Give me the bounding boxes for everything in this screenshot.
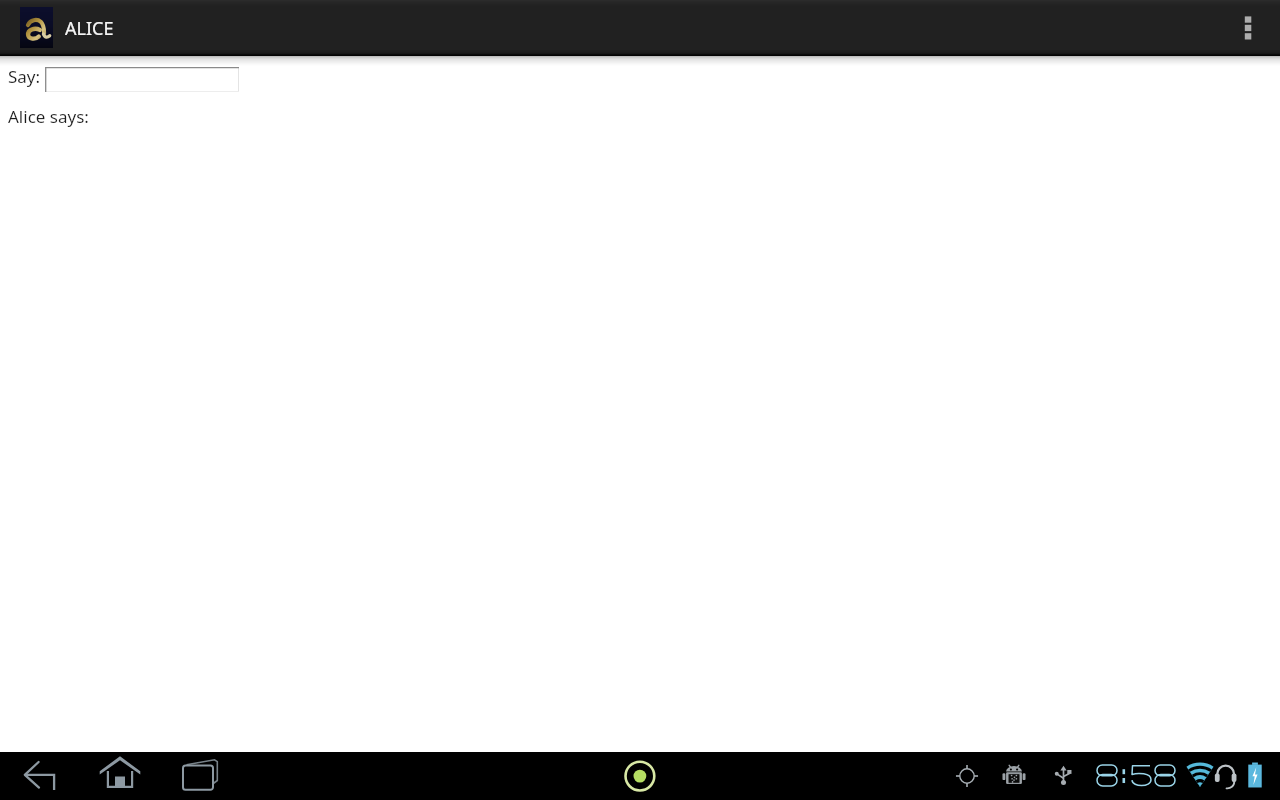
staticText: ALICE <box>65 16 114 41</box>
button[interactable]: More options <box>1232 4 1264 52</box>
button[interactable]: Say text field <box>45 67 239 92</box>
button[interactable]: ALICE <box>14 0 118 56</box>
button[interactable]: Home <box>96 752 144 800</box>
button[interactable]: Recent apps <box>176 752 224 800</box>
staticText: Say: <box>8 65 41 88</box>
button[interactable]: Back <box>12 752 68 800</box>
staticText: Alice says: <box>8 105 89 128</box>
